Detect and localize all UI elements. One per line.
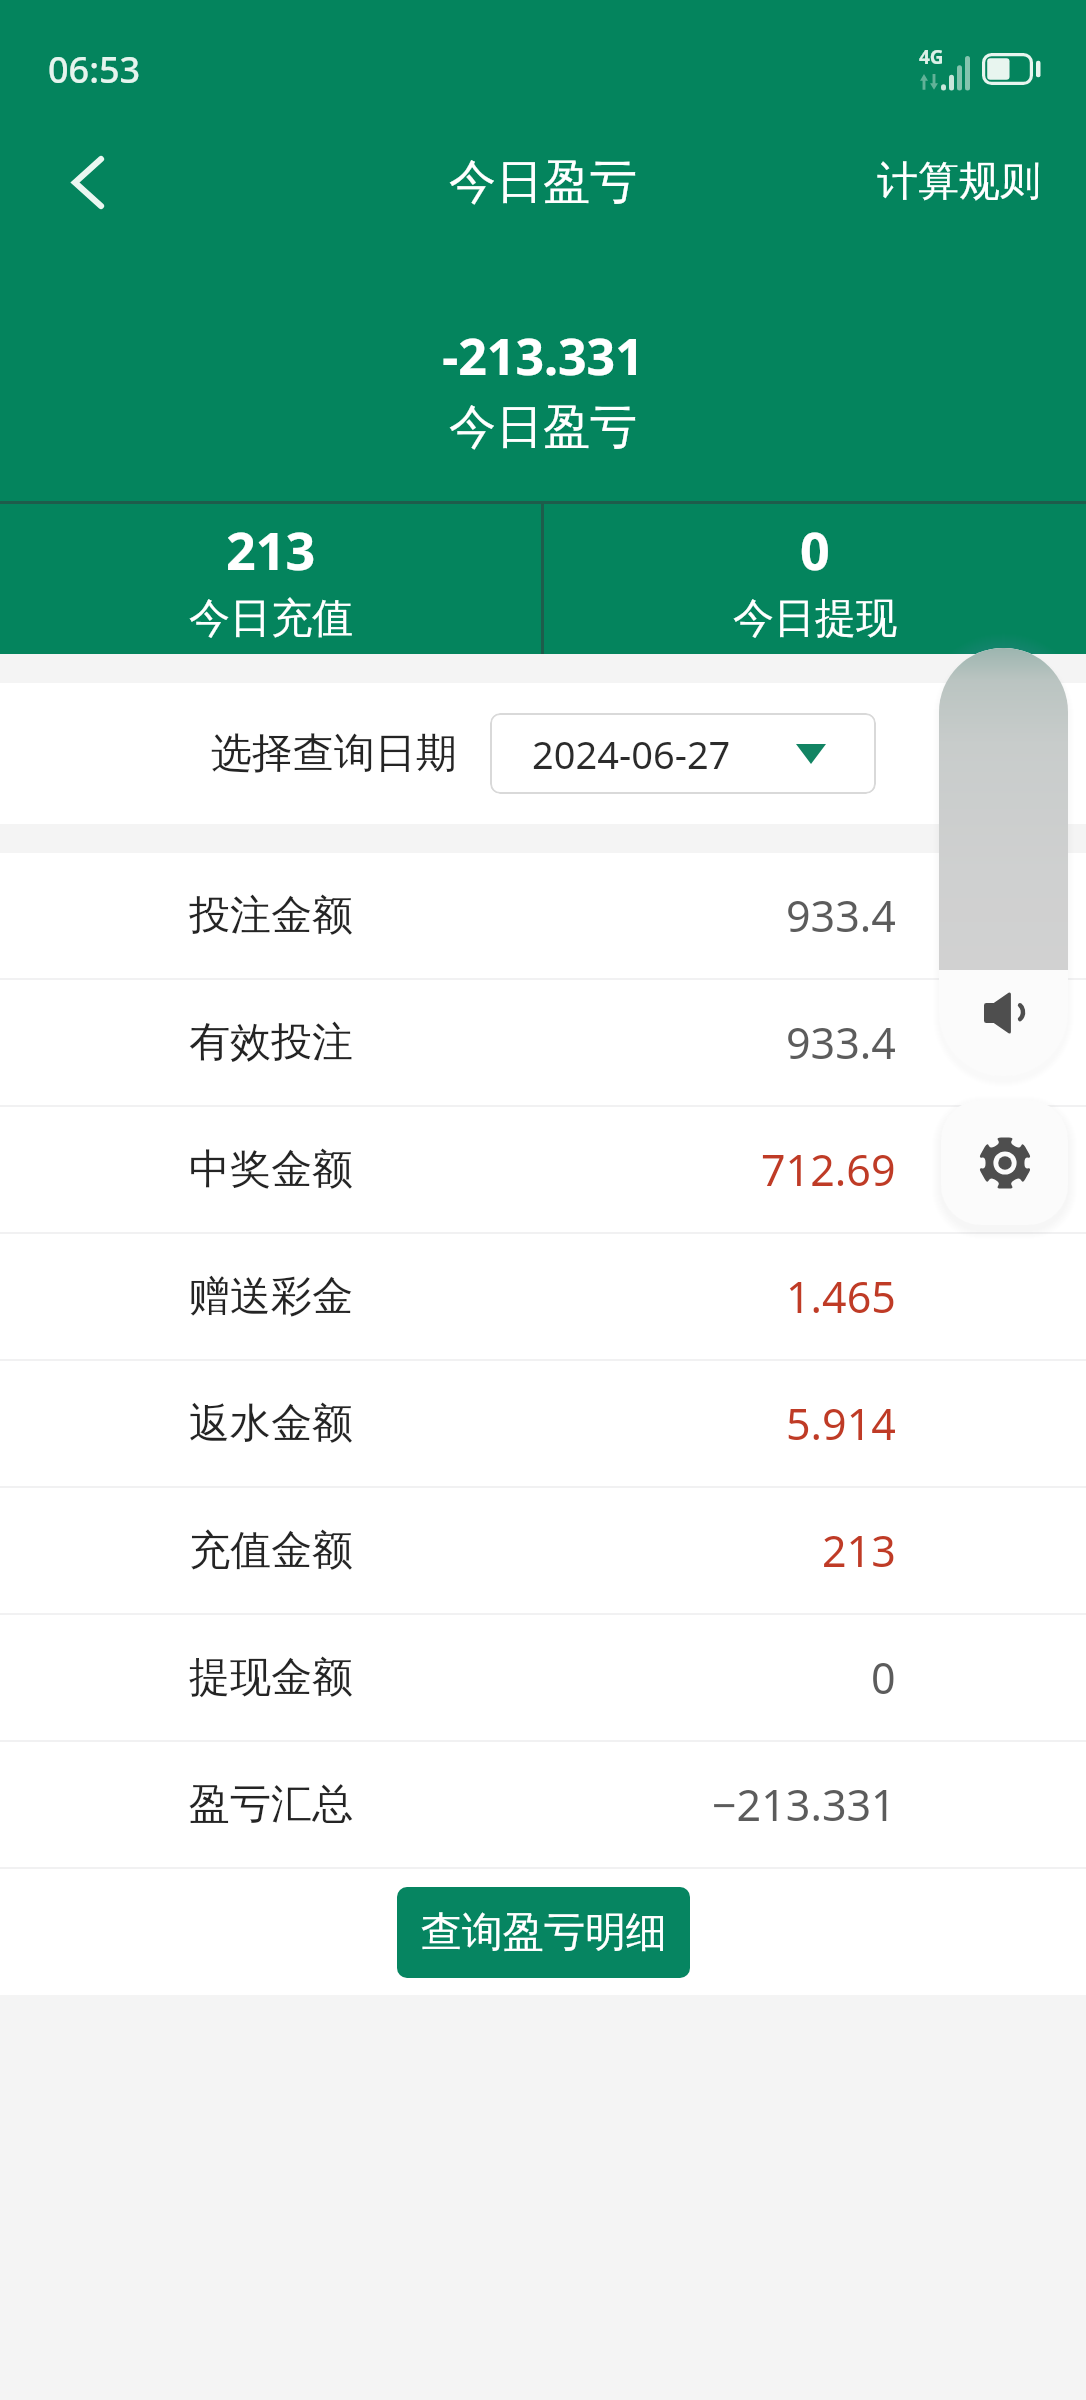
staticText: 查询盈亏明细 bbox=[421, 1907, 667, 1959]
button[interactable]: 中奖金额 bbox=[0, 1107, 1086, 1232]
staticText: 盈亏汇总 bbox=[189, 1779, 353, 1831]
button[interactable]: 盈亏汇总 bbox=[0, 1742, 1086, 1867]
staticText: 5.914 bbox=[786, 1394, 896, 1453]
staticText: −213.331 bbox=[712, 1775, 896, 1834]
button[interactable]: 充值金额 bbox=[0, 1488, 1086, 1613]
staticText: 今日提现 bbox=[733, 593, 897, 645]
staticText: 4G bbox=[919, 44, 944, 70]
staticText: 213 bbox=[822, 1521, 896, 1580]
staticText: 今日盈亏 bbox=[449, 153, 637, 212]
staticText: 中奖金额 bbox=[189, 1144, 353, 1196]
staticText: 712.69 bbox=[761, 1140, 896, 1199]
staticText: 今日充值 bbox=[189, 593, 353, 645]
staticText: 0 bbox=[871, 1648, 896, 1707]
button[interactable]: 赠送彩金 bbox=[0, 1234, 1086, 1359]
staticText: 213 bbox=[226, 514, 316, 585]
staticText: 有效投注 bbox=[189, 1017, 353, 1069]
button[interactable]: 计算规则 bbox=[847, 118, 1086, 246]
button[interactable]: 返水金额 bbox=[0, 1361, 1086, 1486]
staticText: 返水金额 bbox=[189, 1398, 353, 1450]
staticText: 提现金额 bbox=[189, 1652, 353, 1704]
button[interactable]: 0 bbox=[544, 504, 1086, 654]
button[interactable]: 投注金额 bbox=[0, 853, 1086, 978]
button[interactable]: 提现金额 bbox=[0, 1615, 1086, 1740]
staticText: 今日盈亏 bbox=[0, 398, 1086, 457]
staticText: 0 bbox=[800, 514, 830, 585]
staticText: 2024-06-27 bbox=[532, 728, 731, 780]
staticText: 1.465 bbox=[786, 1267, 896, 1326]
staticText: 06:53 bbox=[48, 45, 141, 94]
button[interactable]: Settings bbox=[941, 1100, 1068, 1225]
staticText: -213.331 bbox=[0, 322, 1086, 390]
staticText: 充值金额 bbox=[189, 1525, 353, 1577]
button[interactable]: Volume bbox=[939, 648, 1068, 1076]
button[interactable]: 有效投注 bbox=[0, 980, 1086, 1105]
button[interactable]: 查询盈亏明细 bbox=[397, 1887, 690, 1978]
staticText: 选择查询日期 bbox=[211, 728, 457, 780]
button[interactable]: Back bbox=[0, 118, 176, 246]
button[interactable]: 2024-06-27 bbox=[490, 713, 876, 794]
staticText: 投注金额 bbox=[189, 890, 353, 942]
staticText: 计算规则 bbox=[877, 156, 1041, 208]
button[interactable]: 213 bbox=[0, 504, 541, 654]
staticText: 933.4 bbox=[786, 1013, 896, 1072]
staticText: 赠送彩金 bbox=[189, 1271, 353, 1323]
staticText: 933.4 bbox=[786, 886, 896, 945]
